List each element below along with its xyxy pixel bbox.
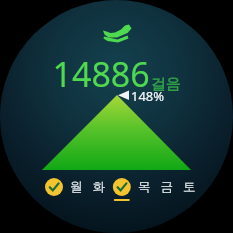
button[interactable]: Steps 14886, 148 percent of goal bbox=[0, 0, 233, 233]
